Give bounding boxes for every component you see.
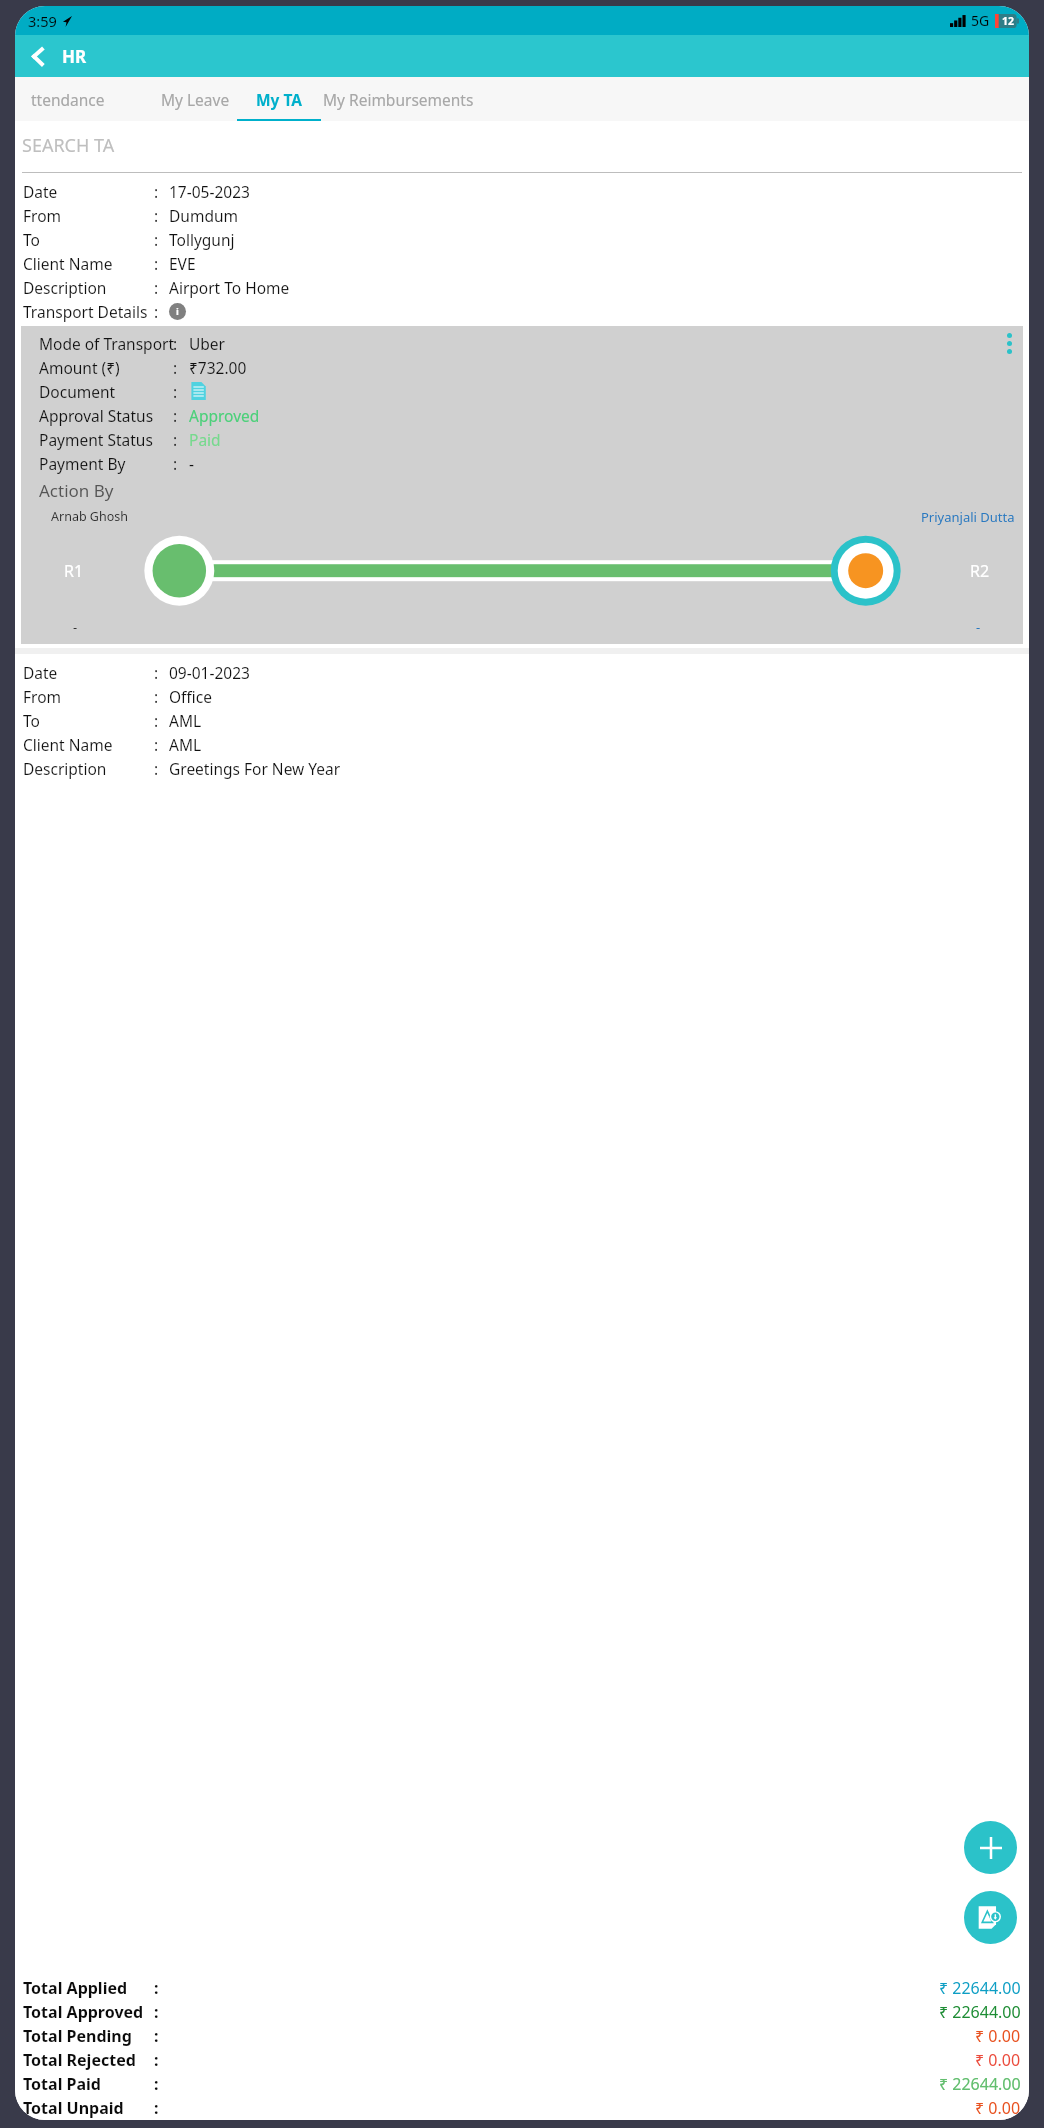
staticText: Total Unpaid — [23, 2097, 124, 2119]
staticText: Total Approved — [23, 2001, 144, 2023]
staticText: : — [154, 277, 159, 298]
staticText: From — [23, 205, 62, 226]
button[interactable]: More options — [998, 330, 1020, 356]
button[interactable]: Download PDF — [964, 1891, 1017, 1944]
staticText: : — [154, 686, 159, 707]
staticText: : — [154, 710, 159, 731]
staticText: ₹ 22644.00 — [939, 1977, 1021, 1999]
staticText: - — [73, 618, 78, 636]
staticText: To — [23, 229, 40, 250]
staticText: ₹ 22644.00 — [939, 2001, 1021, 2023]
button[interactable]: ttendance — [15, 77, 143, 121]
staticText: Transport Details — [23, 301, 148, 322]
staticText: My Leave — [161, 89, 230, 110]
staticText: Date — [23, 662, 58, 683]
button[interactable]: My TA — [237, 77, 321, 121]
staticText: : — [154, 1977, 159, 1999]
staticText: 17-05-2023 — [169, 181, 250, 202]
staticText: : — [173, 405, 178, 426]
staticText: 5G — [971, 11, 990, 30]
staticText: Uber — [189, 333, 226, 354]
staticText: Date — [23, 181, 58, 202]
staticText: : — [154, 301, 159, 322]
staticText: : — [154, 2025, 159, 2047]
staticText: R1 — [64, 560, 84, 582]
staticText: ₹ 0.00 — [975, 2025, 1021, 2047]
staticText: Total Rejected — [23, 2049, 136, 2071]
staticText: i — [176, 305, 179, 318]
staticText: : — [154, 2001, 159, 2023]
staticText: : — [154, 181, 159, 202]
staticText: Total Paid — [23, 2073, 101, 2095]
staticText: : — [154, 205, 159, 226]
staticText: Client Name — [23, 734, 113, 755]
button[interactable]: Back — [21, 39, 55, 73]
staticText: Payment By — [39, 453, 126, 474]
staticText: 3:59 — [28, 11, 57, 31]
staticText: Mode of Transport — [39, 333, 175, 354]
staticText: Priyanjali Dutta — [921, 508, 1015, 526]
staticText: EVE — [169, 253, 196, 274]
button[interactable]: Add — [964, 1821, 1017, 1874]
staticText: To — [23, 710, 40, 731]
staticText: : — [154, 253, 159, 274]
staticText: Dumdum — [169, 205, 238, 226]
staticText: My Reimbursements — [323, 89, 474, 110]
staticText: Office — [169, 686, 212, 707]
staticText: : — [173, 357, 178, 378]
staticText: AML — [169, 734, 202, 755]
staticText: : — [154, 2049, 159, 2071]
staticText: 09-01-2023 — [169, 662, 250, 683]
staticText: : — [154, 2097, 159, 2119]
staticText: - — [976, 618, 981, 636]
staticText: From — [23, 686, 62, 707]
staticText: Description — [23, 758, 107, 779]
staticText: : — [154, 229, 159, 250]
staticText: ₹ 22644.00 — [939, 2073, 1021, 2095]
staticText: SEARCH TA — [22, 133, 115, 158]
staticText: My TA — [256, 89, 303, 110]
staticText: : — [173, 333, 178, 354]
staticText: Payment Status — [39, 429, 153, 450]
staticText: ₹ 0.00 — [975, 2049, 1021, 2071]
button[interactable]: Transport details info — [169, 303, 186, 320]
staticText: Approved — [189, 405, 260, 426]
staticText: : — [154, 662, 159, 683]
staticText: ttendance — [31, 89, 105, 110]
staticText: Greetings For New Year — [169, 758, 341, 779]
staticText: Action By — [39, 479, 114, 502]
button[interactable]: Document — [189, 381, 209, 401]
staticText: : — [154, 2073, 159, 2095]
staticText: Paid — [189, 429, 221, 450]
staticText: Client Name — [23, 253, 113, 274]
staticText: Document — [39, 381, 116, 402]
staticText: : — [173, 381, 178, 402]
button[interactable]: My Reimbursements — [323, 77, 503, 121]
staticText: Total Applied — [23, 1977, 128, 1999]
staticText: : — [154, 734, 159, 755]
staticText: Arnab Ghosh — [51, 508, 128, 525]
staticText: : — [173, 429, 178, 450]
staticText: ₹ 0.00 — [975, 2097, 1021, 2119]
button[interactable]: My Leave — [135, 77, 255, 121]
staticText: Tollygunj — [169, 229, 235, 250]
staticText: ₹732.00 — [189, 357, 247, 378]
staticText: 12 — [1002, 14, 1015, 28]
staticText: R2 — [970, 560, 990, 582]
staticText: HR — [62, 45, 87, 68]
staticText: Total Pending — [23, 2025, 132, 2047]
staticText: Amount (₹) — [39, 357, 120, 378]
staticText: : — [173, 453, 178, 474]
staticText: : — [154, 758, 159, 779]
staticText: Approval Status — [39, 405, 154, 426]
staticText: Description — [23, 277, 107, 298]
staticText: AML — [169, 710, 202, 731]
staticText: Airport To Home — [169, 277, 290, 298]
staticText: - — [189, 453, 194, 474]
